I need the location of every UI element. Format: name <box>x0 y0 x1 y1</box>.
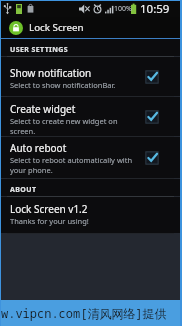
button[interactable]: Toggle setting <box>145 110 159 124</box>
staticText: 100% <box>114 4 132 14</box>
staticText: USER SETTINGS <box>10 45 69 55</box>
staticText: Select to reboot automatically with your… <box>10 155 133 175</box>
button[interactable]: Show notification <box>1 57 180 96</box>
button[interactable]: Lock Screen v1.2 <box>1 197 180 233</box>
staticText: Lock Screen v1.2 <box>10 202 88 216</box>
staticText: 10:59 <box>140 1 170 17</box>
staticText: Auto reboot <box>10 141 67 155</box>
staticText: w.vipcn.com[清风网络]提供 <box>1 305 167 321</box>
button[interactable]: Auto reboot <box>1 137 180 178</box>
button[interactable]: Create widget <box>1 97 180 136</box>
staticText: Select to create new widget on screen. <box>10 116 118 136</box>
staticText: ABOUT <box>10 185 37 195</box>
staticText: Show notification <box>10 66 92 80</box>
staticText: Thanks for your using! <box>10 216 89 226</box>
button[interactable]: Toggle setting <box>145 151 159 165</box>
staticText: Create widget <box>10 102 76 116</box>
button[interactable]: Toggle setting <box>145 70 159 84</box>
staticText: Select to show notificationBar. <box>10 80 116 90</box>
staticText: Lock Screen <box>29 21 84 34</box>
